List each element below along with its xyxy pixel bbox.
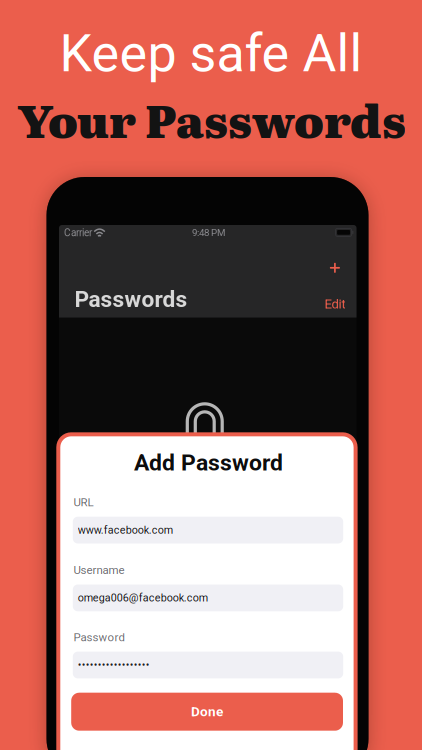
staticText: Edit xyxy=(324,296,345,312)
staticText: URL xyxy=(74,496,94,509)
staticText: omega006@facebook.com xyxy=(78,592,208,604)
staticText: 9:48 PM xyxy=(192,227,225,238)
staticText: Password xyxy=(74,631,125,644)
staticText: Done xyxy=(191,704,223,720)
staticText: Passwords xyxy=(74,286,187,313)
staticText: Username xyxy=(74,563,125,577)
button[interactable]: Add password xyxy=(322,255,348,281)
staticText: www.facebook.com xyxy=(78,524,173,536)
button[interactable]: Edit xyxy=(324,296,345,312)
button[interactable]: Done xyxy=(71,693,343,731)
staticText: •••••••••••••••••• xyxy=(78,659,150,671)
staticText: Keep safe All xyxy=(59,23,362,84)
staticText: Add Password xyxy=(134,449,283,476)
staticText: Carrier xyxy=(64,227,92,239)
staticText: Your Passwords xyxy=(18,85,406,152)
